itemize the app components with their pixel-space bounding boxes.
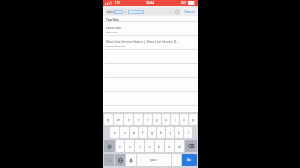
button[interactable]: k [175,127,183,138]
button[interactable]: b [155,140,164,152]
staticText: 60% [181,1,187,5]
staticText: k [178,130,180,135]
button[interactable]: Numbers [104,154,114,166]
button[interactable]: u [162,114,170,125]
button[interactable]: g [148,127,156,138]
button[interactable]: Emoji [115,154,125,166]
button[interactable]: Delete [185,140,197,152]
staticText: Xbox Live Service Status | Xbox Live Ser… [106,39,179,43]
button[interactable]: j [166,127,174,138]
button[interactable]: l [184,127,192,138]
staticText: xbox.com [106,30,118,33]
staticText: Cancel [184,9,195,14]
staticText: x [129,144,131,149]
staticText: j [170,130,171,135]
button[interactable]: Dictate [126,154,136,166]
staticText: xbox.com [106,25,121,29]
staticText: v [149,144,151,149]
staticText: xbox [107,10,114,14]
button[interactable]: x [125,140,134,152]
button[interactable]: Xbox Live Service Status | Xbox Live Ser… [103,36,198,49]
button[interactable]: m [175,140,184,152]
button[interactable]: s [120,127,129,138]
staticText: Top Hits [106,17,119,21]
button[interactable]: Cancel [183,9,196,14]
staticText: s [124,130,126,135]
staticText: — [124,10,127,14]
button[interactable]: y [153,114,161,125]
staticText: . [176,158,177,163]
staticText: g [151,130,154,135]
button[interactable]: z [116,140,124,152]
staticText: y [156,117,158,122]
staticText: t [147,117,149,122]
staticText: z [119,144,121,149]
button[interactable]: f [139,127,147,138]
staticText: c [139,144,141,149]
button[interactable]: n [165,140,174,152]
staticText: n [168,144,171,149]
button[interactable]: xbox [105,8,181,15]
staticText: i [175,117,176,122]
button[interactable]: c [135,140,144,152]
staticText: q [107,117,110,122]
staticText: b [158,144,161,149]
staticText: w [117,117,120,122]
button[interactable]: a [110,127,119,138]
button[interactable]: q [104,114,113,125]
staticText: o [183,117,186,122]
button[interactable]: t [144,114,152,125]
button[interactable]: space [137,154,171,166]
staticText: u [165,117,168,122]
staticText: l [188,130,189,135]
staticText: a [114,130,116,135]
button[interactable]: xbox.com [103,22,198,35]
button[interactable]: p [189,114,197,125]
staticText: e [128,117,130,122]
staticText: d [133,130,136,135]
button[interactable]: Shift [104,140,115,152]
button[interactable]: Clear search [175,10,179,14]
button[interactable]: h [157,127,165,138]
staticText: .com [115,10,122,14]
staticText: 10:44 [146,1,155,5]
staticText: m [178,144,182,149]
staticText: Go [187,158,192,162]
button[interactable]: o [180,114,188,125]
button[interactable]: w [114,114,123,125]
staticText: T-M [115,1,120,5]
button[interactable]: r [134,114,143,125]
button[interactable]: d [130,127,138,138]
button[interactable]: e [124,114,133,125]
staticText: r [138,117,140,122]
button[interactable]: Go [182,154,197,166]
staticText: xbox.com [129,10,143,14]
staticText: xbox.com/status [106,44,126,47]
staticText: h [160,130,163,135]
staticText: f [142,130,144,135]
button[interactable]: i [171,114,179,125]
staticText: space [150,158,158,162]
staticText: p [192,117,195,122]
button[interactable]: v [145,140,154,152]
